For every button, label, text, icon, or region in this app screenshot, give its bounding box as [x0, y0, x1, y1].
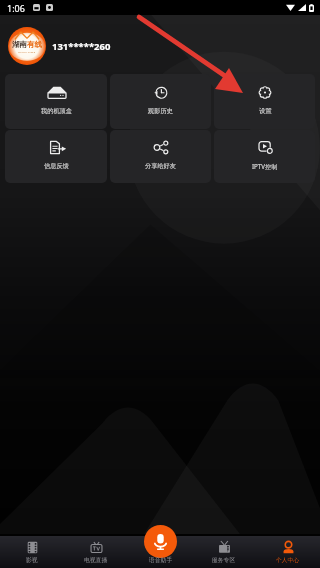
button[interactable]: 服务专区	[201, 536, 247, 568]
button[interactable]: 影视	[9, 536, 55, 568]
staticText: 信息反馈	[44, 162, 69, 170]
button[interactable]: 电视直播	[73, 536, 119, 568]
staticText: 语音助手	[149, 556, 173, 563]
button[interactable]: 个人中心	[265, 536, 311, 568]
button[interactable]: 头像	[8, 27, 46, 65]
staticText: 131*****260	[52, 40, 111, 53]
staticText: HUNAN CABLE	[18, 50, 36, 53]
staticText: 我的机顶盒	[41, 107, 72, 115]
button[interactable]: IPTV控制	[214, 130, 315, 183]
staticText: 有线	[27, 40, 42, 49]
staticText: 服务专区	[212, 556, 236, 563]
staticText: 影视	[26, 556, 38, 563]
button[interactable]: 设置	[214, 74, 315, 129]
staticText: 分享给好友	[145, 162, 176, 170]
staticText: 观影历史	[148, 107, 173, 115]
staticText: 电视直播	[84, 556, 108, 563]
button[interactable]: 观影历史	[110, 74, 211, 129]
button[interactable]: 分享给好友	[110, 130, 211, 183]
button[interactable]: 语音助手	[144, 525, 177, 558]
staticText: 设置	[259, 107, 272, 115]
staticText: 个人中心	[276, 556, 300, 563]
staticText: 1:06	[7, 2, 25, 14]
staticText: 湖南	[12, 40, 27, 49]
button[interactable]: 信息反馈	[5, 130, 107, 183]
staticText: IPTV控制	[252, 162, 278, 170]
button[interactable]: 我的机顶盒	[5, 74, 107, 129]
